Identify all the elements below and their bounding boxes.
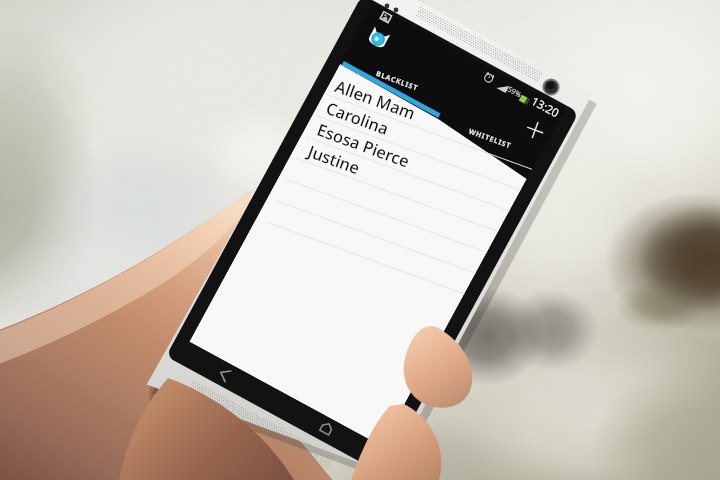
button[interactable]: Blacklist contacts app shown on a phone [0, 0, 720, 480]
